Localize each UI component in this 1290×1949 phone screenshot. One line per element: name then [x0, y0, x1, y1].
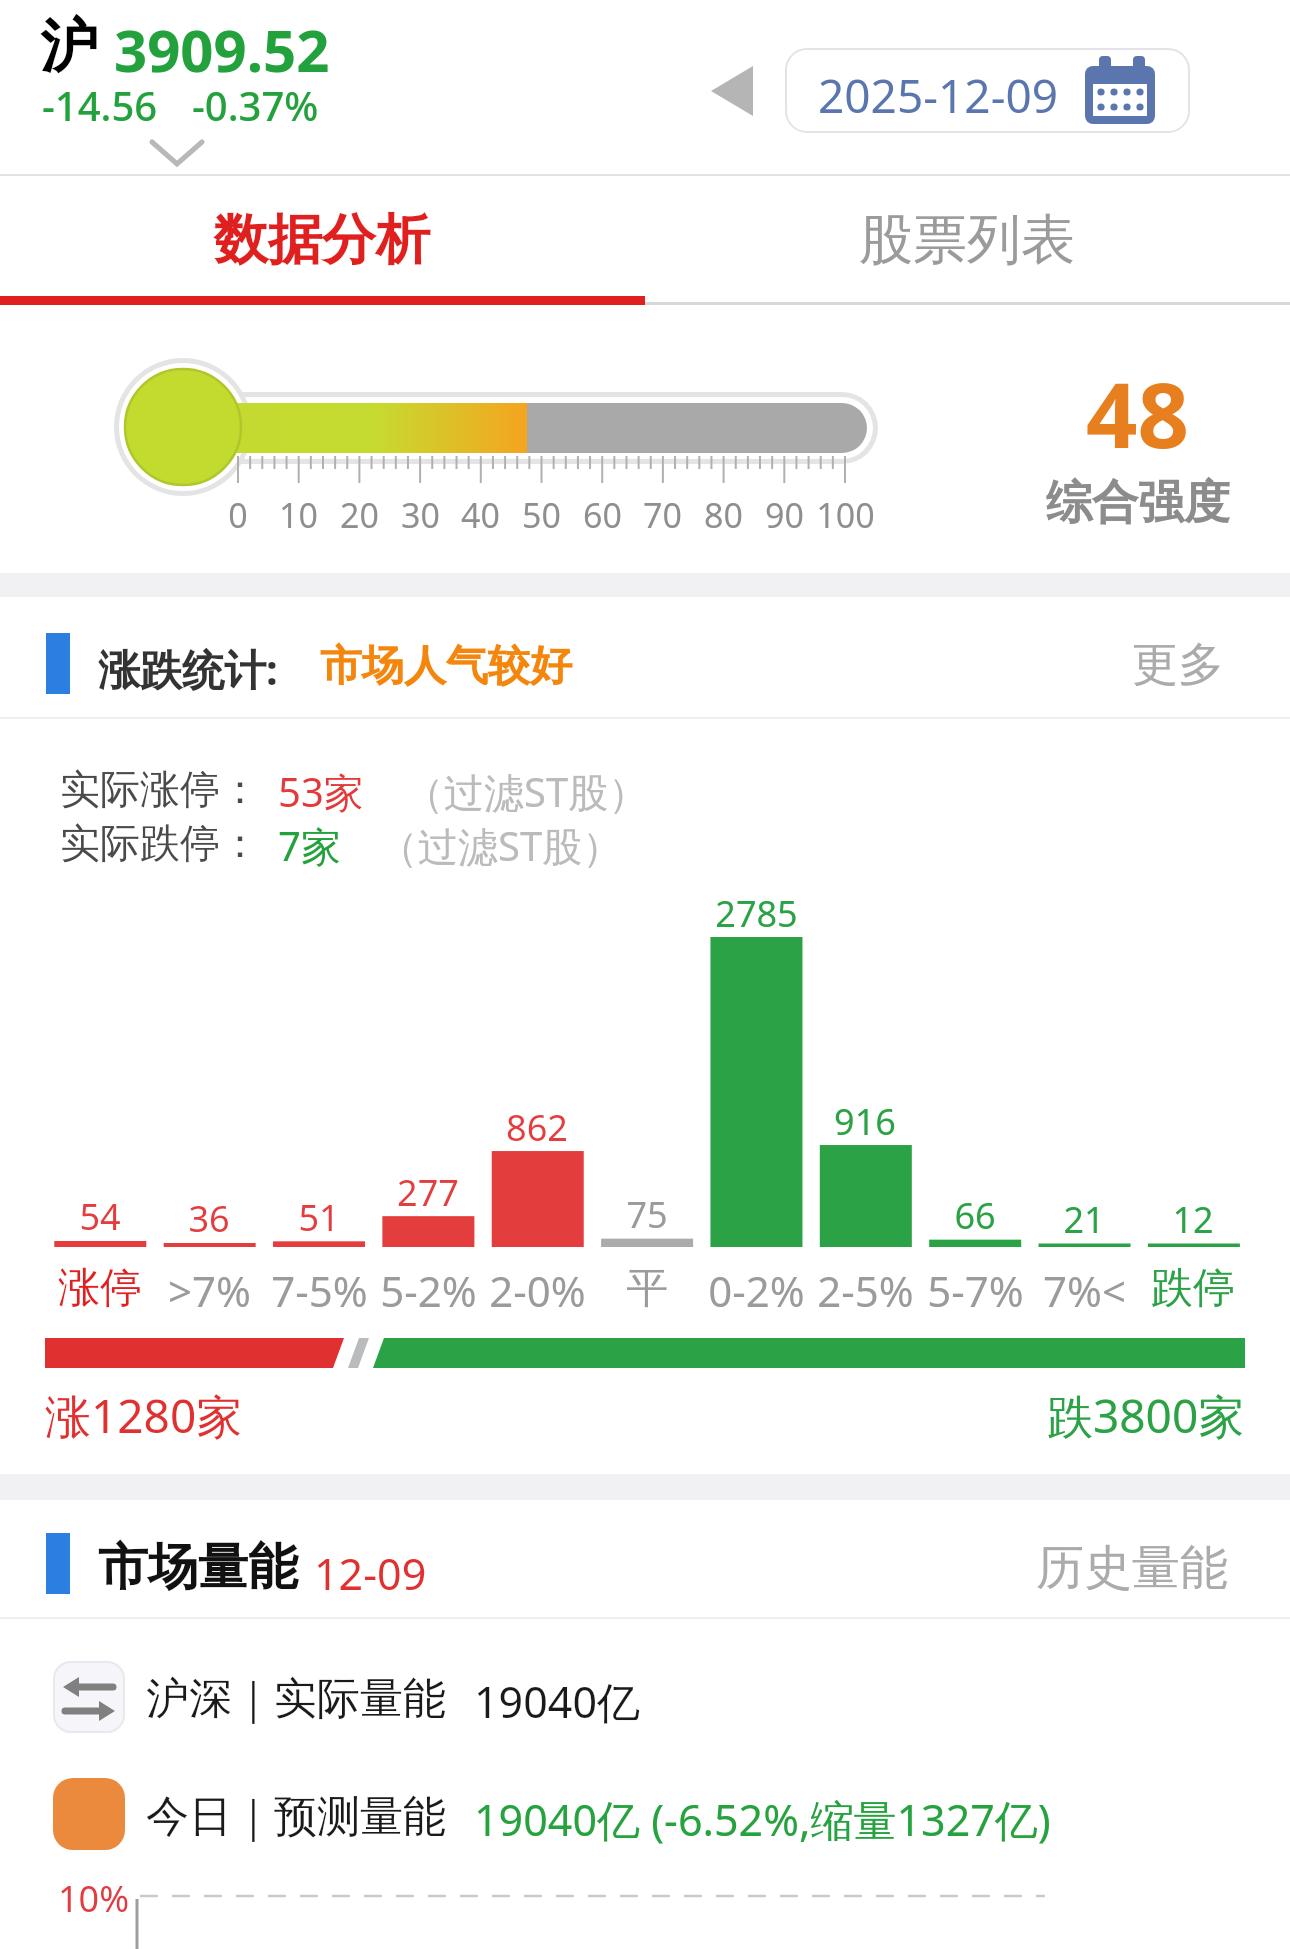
button[interactable]: 历史量能	[1030, 1530, 1260, 1600]
staticText: 市场人气较好	[320, 640, 572, 693]
staticText: 19040亿 (-6.52%,缩量1327亿)	[474, 1790, 1051, 1849]
button[interactable]	[53, 1661, 125, 1733]
staticText: 80	[704, 492, 743, 538]
staticText: -0.37%	[192, 78, 319, 132]
staticText: 沪	[40, 10, 98, 83]
staticText: 7-5%	[271, 1262, 368, 1319]
staticText: 100	[816, 492, 875, 538]
staticText: 0	[228, 492, 248, 538]
staticText: 市场量能	[98, 1536, 298, 1599]
staticText: 66	[954, 1191, 996, 1240]
staticText: （过滤ST股）	[404, 764, 649, 819]
staticText: 7%<	[1043, 1262, 1126, 1319]
staticText: 7家	[278, 818, 341, 873]
button[interactable]	[645, 176, 1290, 304]
button[interactable]	[0, 176, 645, 304]
staticText: 平	[626, 1262, 668, 1315]
staticText: 实际跌停：	[60, 818, 260, 868]
staticText: 54	[79, 1192, 121, 1241]
button[interactable]	[690, 50, 770, 130]
staticText: 沪深｜实际量能	[146, 1672, 447, 1726]
staticText: 实际涨停：	[60, 764, 260, 814]
staticText: 19040亿	[474, 1672, 640, 1731]
staticText: 75	[626, 1190, 668, 1239]
staticText: 5-2%	[380, 1262, 477, 1319]
staticText: 50	[522, 492, 561, 538]
staticText: 更多	[1132, 636, 1224, 694]
staticText: 916	[834, 1097, 896, 1146]
button[interactable]: 更多	[1120, 630, 1260, 700]
staticText: 10%	[58, 1874, 130, 1923]
staticText: 36	[188, 1194, 230, 1243]
staticText: 数据分析	[214, 206, 430, 274]
staticText: 今日｜预测量能	[146, 1790, 447, 1844]
staticText: 60	[583, 492, 622, 538]
staticText: 5-7%	[927, 1262, 1024, 1319]
staticText: 0-2%	[708, 1262, 805, 1319]
staticText: 40	[461, 492, 500, 538]
staticText: （过滤ST股）	[378, 818, 623, 873]
staticText: 862	[506, 1103, 568, 1152]
staticText: 股票列表	[859, 206, 1075, 274]
staticText: 跌停	[1151, 1262, 1235, 1315]
staticText: 51	[298, 1193, 340, 1242]
staticText: 48	[1086, 352, 1189, 475]
staticText: 53家	[278, 764, 364, 819]
staticText: -14.56	[42, 78, 158, 132]
button[interactable]: 2025-12-09	[785, 48, 1190, 133]
staticText: 涨停	[58, 1262, 142, 1315]
staticText: 10	[279, 492, 318, 538]
button[interactable]	[53, 1778, 125, 1850]
staticText: 3909.52	[114, 10, 330, 89]
staticText: 涨跌统计:	[98, 640, 289, 697]
staticText: 涨1280家	[45, 1384, 243, 1447]
staticText: 12	[1172, 1195, 1214, 1244]
staticText: 2-5%	[817, 1262, 914, 1319]
staticText: 12-09	[314, 1544, 427, 1603]
staticText: 跌3800家	[1047, 1384, 1245, 1447]
staticText: >7%	[168, 1262, 251, 1319]
staticText: 2-0%	[489, 1262, 586, 1319]
staticText: 277	[397, 1168, 459, 1217]
staticText: 综合强度	[1046, 474, 1230, 532]
staticText: 2785	[715, 889, 798, 938]
staticText: 20	[340, 492, 379, 538]
staticText: 历史量能	[1036, 1538, 1228, 1598]
staticText: 70	[643, 492, 682, 538]
staticText: 90	[765, 492, 804, 538]
staticText: 2025-12-09	[818, 64, 1059, 127]
staticText: 21	[1063, 1195, 1105, 1244]
staticText: 30	[401, 492, 440, 538]
